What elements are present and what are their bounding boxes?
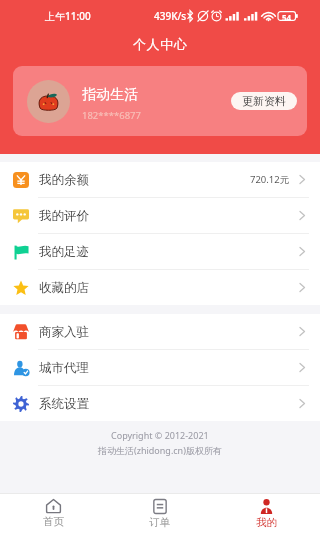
button[interactable]: 城市代理	[0, 350, 320, 385]
button[interactable]: 更新资料	[231, 92, 297, 110]
staticText: 订单	[149, 516, 170, 529]
staticText: 我的评价	[39, 208, 89, 224]
staticText: Copyright © 2012-2021	[111, 429, 209, 441]
button[interactable]: 系统设置	[0, 386, 320, 421]
staticText: 首页	[43, 515, 64, 528]
other: 我的	[259, 499, 274, 514]
button[interactable]: 我的评价	[0, 198, 320, 233]
button[interactable]: 收藏的店	[0, 270, 320, 305]
staticText: 我的余额	[39, 172, 89, 188]
staticText: 182****6877	[82, 109, 141, 122]
button[interactable]: 我的	[213, 494, 320, 533]
staticText: 720.12元	[250, 173, 290, 186]
button[interactable]: 商家入驻	[0, 314, 320, 349]
other: 订单	[153, 499, 167, 514]
staticText: 439K/s	[154, 9, 187, 23]
button[interactable]: 我的余额	[0, 162, 320, 197]
button[interactable]: 头像	[27, 80, 70, 123]
staticText: 我的足迹	[39, 244, 89, 260]
button[interactable]: 我的足迹	[0, 234, 320, 269]
staticText: 城市代理	[39, 360, 89, 376]
staticText: 上午11:00	[45, 9, 91, 23]
staticText: 54	[282, 12, 292, 23]
staticText: 指动生活	[82, 86, 138, 104]
button[interactable]: 首页	[0, 494, 106, 533]
staticText: 更新资料	[242, 94, 286, 108]
staticText: 收藏的店	[39, 280, 89, 296]
staticText: 指动生活(zhidong.cn)版权所有	[98, 444, 222, 456]
other: 首页	[46, 499, 61, 513]
staticText: 系统设置	[39, 396, 89, 412]
staticText: 个人中心	[133, 36, 188, 52]
staticText: 我的	[256, 516, 277, 529]
staticText: 商家入驻	[39, 324, 89, 340]
button[interactable]: 订单	[106, 494, 213, 533]
